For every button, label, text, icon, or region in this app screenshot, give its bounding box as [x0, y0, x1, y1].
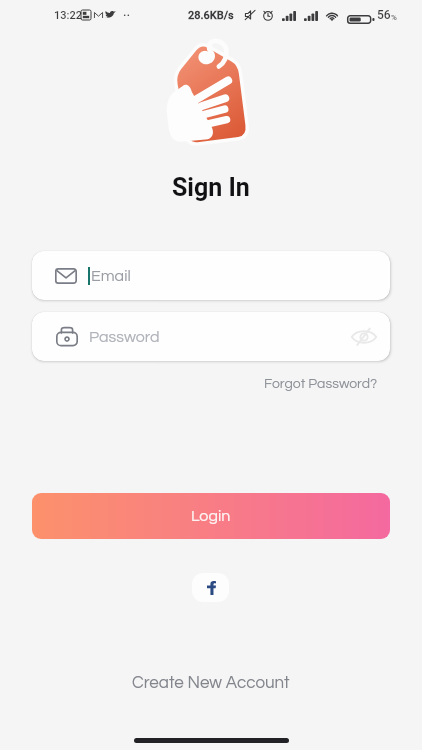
staticText: Sign In [172, 173, 250, 202]
staticText: Create New Account [132, 674, 290, 692]
button[interactable]: Sign in with Facebook [192, 573, 229, 602]
staticText: Forgot Password? [264, 377, 378, 391]
staticText: 56 [377, 8, 391, 22]
button[interactable]: Create New Account [122, 670, 300, 696]
button[interactable]: Email [32, 251, 390, 300]
button[interactable]: Show password [342, 315, 386, 359]
staticText: Login [191, 508, 231, 524]
staticText: Password [89, 329, 160, 345]
button[interactable]: Password [32, 312, 390, 361]
staticText: % [391, 13, 397, 22]
staticText: 13:22 [54, 9, 82, 22]
button[interactable]: Forgot Password? [258, 374, 384, 394]
staticText: 28.6KB/s [188, 9, 234, 22]
button[interactable]: Login [32, 493, 390, 539]
staticText: Email [91, 268, 131, 284]
